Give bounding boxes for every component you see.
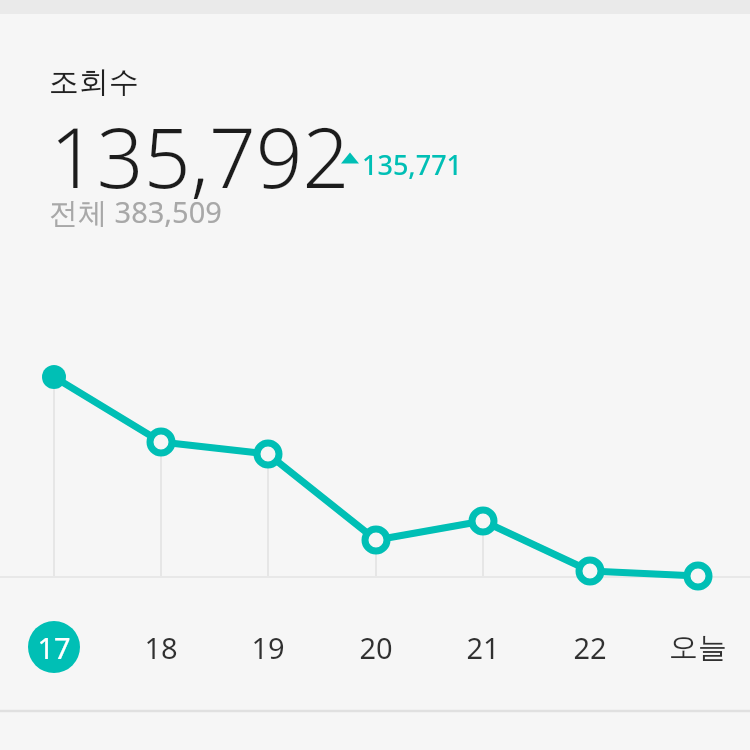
- staticText: 22: [573, 628, 607, 667]
- staticText: 135,771: [362, 146, 463, 183]
- button[interactable]: 17: [28, 621, 80, 673]
- button[interactable]: 19: [232, 621, 304, 673]
- staticText: 17: [37, 628, 71, 667]
- staticText: 135,792: [50, 100, 350, 212]
- staticText: 조회수: [49, 63, 139, 101]
- button[interactable]: 오늘: [662, 621, 734, 673]
- button[interactable]: 21: [447, 621, 519, 673]
- staticText: 21: [466, 628, 500, 667]
- staticText: 18: [144, 628, 178, 667]
- button[interactable]: 18: [125, 621, 197, 673]
- staticText: 20: [359, 628, 393, 667]
- staticText: 전체 383,509: [49, 192, 222, 232]
- button[interactable]: 22: [554, 621, 626, 673]
- button[interactable]: 20: [340, 621, 412, 673]
- staticText: 오늘: [669, 629, 727, 666]
- staticText: 19: [251, 628, 285, 667]
